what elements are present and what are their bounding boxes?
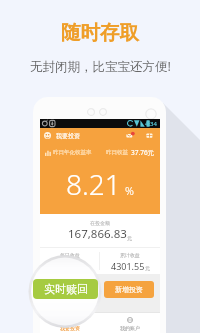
staticText: 实时赎回 xyxy=(57,285,85,294)
staticText: 37.76元 xyxy=(131,148,155,157)
staticText: 新增投资 xyxy=(115,285,143,294)
staticText: 430.22 xyxy=(53,260,82,272)
staticText: 无封闭期，比宝宝还方便! xyxy=(30,58,171,75)
button[interactable]: 我的账户 xyxy=(100,313,160,333)
staticText: 累计收益 xyxy=(120,252,140,258)
staticText: 元 xyxy=(127,235,132,241)
staticText: 4:34 xyxy=(145,120,157,128)
staticText: 4301.55 xyxy=(111,260,145,272)
staticText: 8.21 xyxy=(66,165,121,203)
button[interactable]: Gift box xyxy=(145,131,154,140)
staticText: 我要投资 xyxy=(56,132,80,140)
staticText: 实时赎回 xyxy=(44,282,88,296)
button[interactable]: 新增投资 xyxy=(104,281,154,298)
button[interactable]: 实时赎回 xyxy=(33,279,98,299)
staticText: 167,866.83 xyxy=(68,226,127,242)
button[interactable]: Messages xyxy=(126,131,135,140)
staticText: 我的账户 xyxy=(120,325,140,331)
staticText: 随时存取 xyxy=(61,20,139,45)
button[interactable]: 实时赎回 xyxy=(46,281,95,298)
staticText: 每日收益 xyxy=(60,252,80,258)
staticText: 昨日收益 xyxy=(106,149,128,156)
button[interactable]: 我要投资 xyxy=(40,313,100,333)
staticText: 元 xyxy=(145,265,150,271)
staticText: 我要投资 xyxy=(60,325,80,331)
staticText: 在投金额 xyxy=(90,220,110,226)
staticText: 昨日年化收益率 xyxy=(53,149,92,156)
staticText: % xyxy=(125,183,134,198)
